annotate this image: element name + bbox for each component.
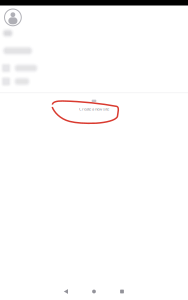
button[interactable]: Back bbox=[64, 286, 68, 297]
button[interactable]: Create a new site bbox=[0, 93, 188, 117]
button[interactable] bbox=[0, 61, 188, 75]
button[interactable]: Recent apps bbox=[120, 286, 124, 297]
button[interactable] bbox=[0, 75, 188, 88]
button[interactable]: Account bbox=[0, 5, 188, 26]
button[interactable]: Home bbox=[92, 286, 96, 297]
staticText: Create a new site bbox=[79, 106, 109, 112]
